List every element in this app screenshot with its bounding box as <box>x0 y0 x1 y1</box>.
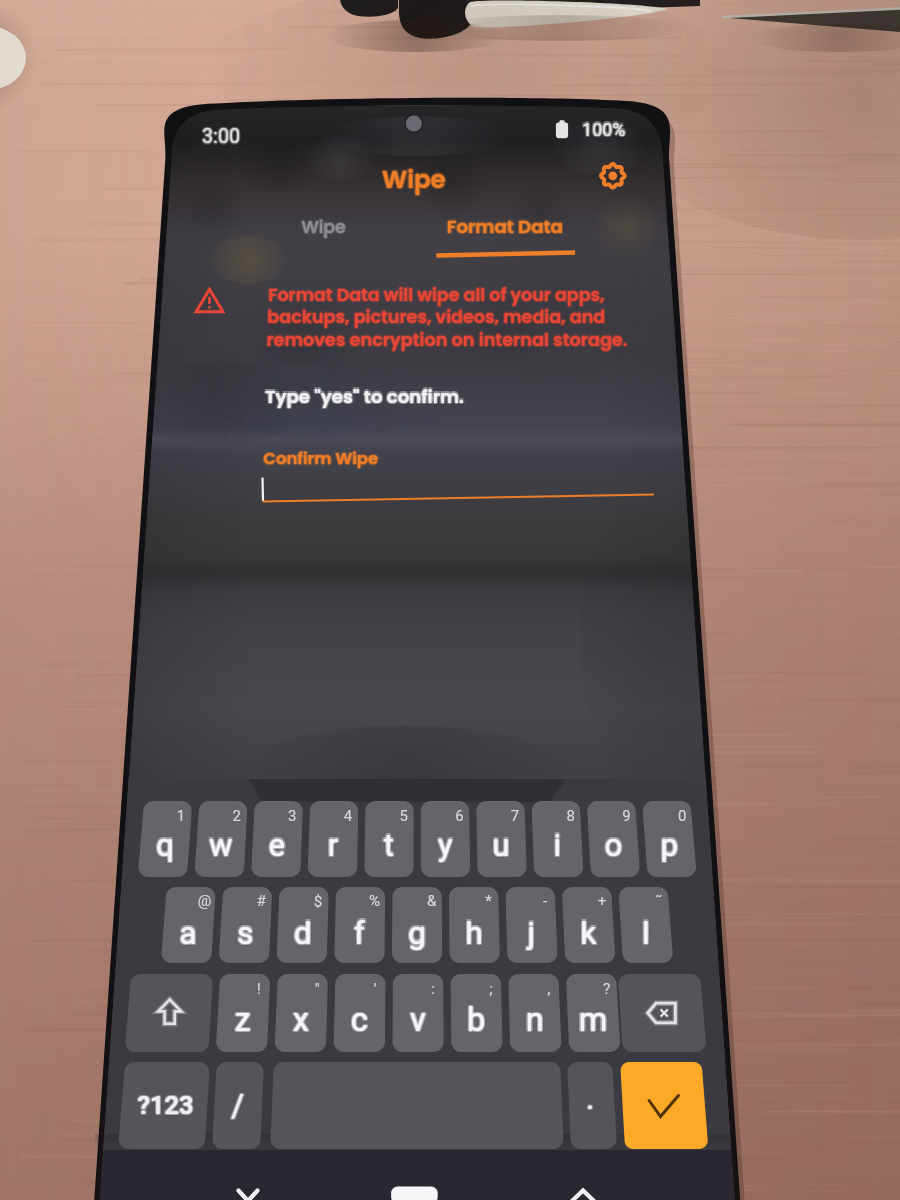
button[interactable]: Settings <box>596 156 636 196</box>
button[interactable]: Symbols <box>110 1058 166 1144</box>
button[interactable]: Enter <box>652 1058 707 1144</box>
button[interactable]: Space <box>225 1058 500 1144</box>
button[interactable]: Wipe tab <box>272 208 382 252</box>
button[interactable]: Backspace <box>651 970 708 1054</box>
button[interactable]: Confirm Wipe text field <box>258 444 656 508</box>
button[interactable]: Format Data tab <box>430 206 580 250</box>
button[interactable]: Shift <box>117 970 169 1054</box>
